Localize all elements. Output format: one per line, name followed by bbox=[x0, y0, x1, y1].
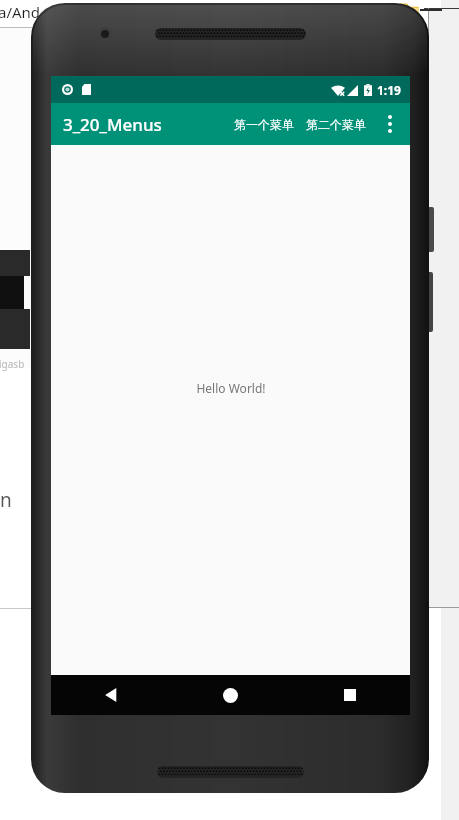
button[interactable]: Home bbox=[170, 675, 290, 715]
button[interactable]: More options bbox=[372, 103, 408, 145]
staticText: 第一个菜单 bbox=[234, 117, 294, 132]
staticText: n bbox=[0, 487, 12, 513]
button[interactable]: 3_20_Menus bbox=[63, 113, 162, 136]
staticText: Hello World! bbox=[196, 380, 266, 396]
button[interactable]: Recent apps bbox=[290, 675, 410, 715]
button[interactable]: 第二个菜单 bbox=[300, 103, 372, 145]
button[interactable]: Back bbox=[51, 675, 170, 715]
staticText: a/And bbox=[0, 2, 41, 22]
staticText: 1:19 bbox=[377, 82, 401, 98]
staticText: igasb bbox=[0, 357, 25, 371]
button[interactable]: 第一个菜单 bbox=[228, 103, 300, 145]
staticText: 第二个菜单 bbox=[306, 117, 366, 132]
